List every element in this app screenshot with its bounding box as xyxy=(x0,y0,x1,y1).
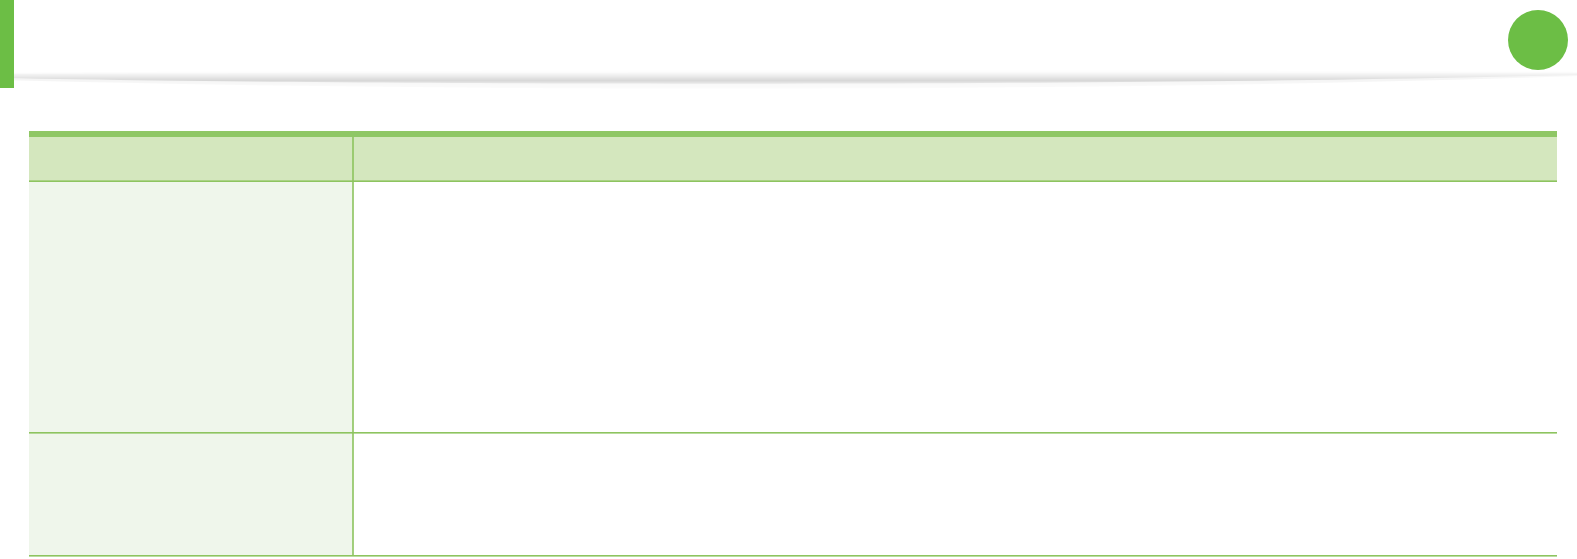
button[interactable]: Add xyxy=(1508,10,1568,70)
button[interactable] xyxy=(29,182,1557,432)
button[interactable] xyxy=(29,432,1557,555)
